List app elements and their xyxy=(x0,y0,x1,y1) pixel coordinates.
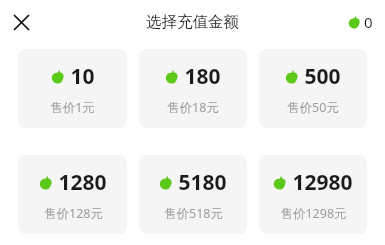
staticText: 5180 xyxy=(178,168,227,197)
button[interactable]: 180 xyxy=(139,49,247,128)
button[interactable]: 0 xyxy=(348,12,373,32)
staticText: 0 xyxy=(364,12,373,32)
button[interactable]: 500 xyxy=(259,49,367,128)
button[interactable]: 5180 xyxy=(139,155,247,234)
staticText: 180 xyxy=(184,62,221,91)
button[interactable]: 12980 xyxy=(259,155,367,234)
staticText: 售价50元 xyxy=(287,99,339,116)
button[interactable]: Close xyxy=(7,8,35,36)
staticText: 10 xyxy=(70,62,95,91)
button[interactable]: 10 xyxy=(18,49,127,128)
staticText: 售价128元 xyxy=(44,205,103,222)
staticText: 售价18元 xyxy=(167,99,219,116)
staticText: 售价518元 xyxy=(164,205,223,222)
button[interactable]: 1280 xyxy=(18,155,127,234)
staticText: 12980 xyxy=(292,168,353,197)
staticText: 售价1元 xyxy=(50,99,95,116)
staticText: 选择充值金额 xyxy=(146,12,239,32)
staticText: 500 xyxy=(304,62,341,91)
staticText: 1280 xyxy=(58,168,107,197)
staticText: 售价1298元 xyxy=(280,205,347,222)
